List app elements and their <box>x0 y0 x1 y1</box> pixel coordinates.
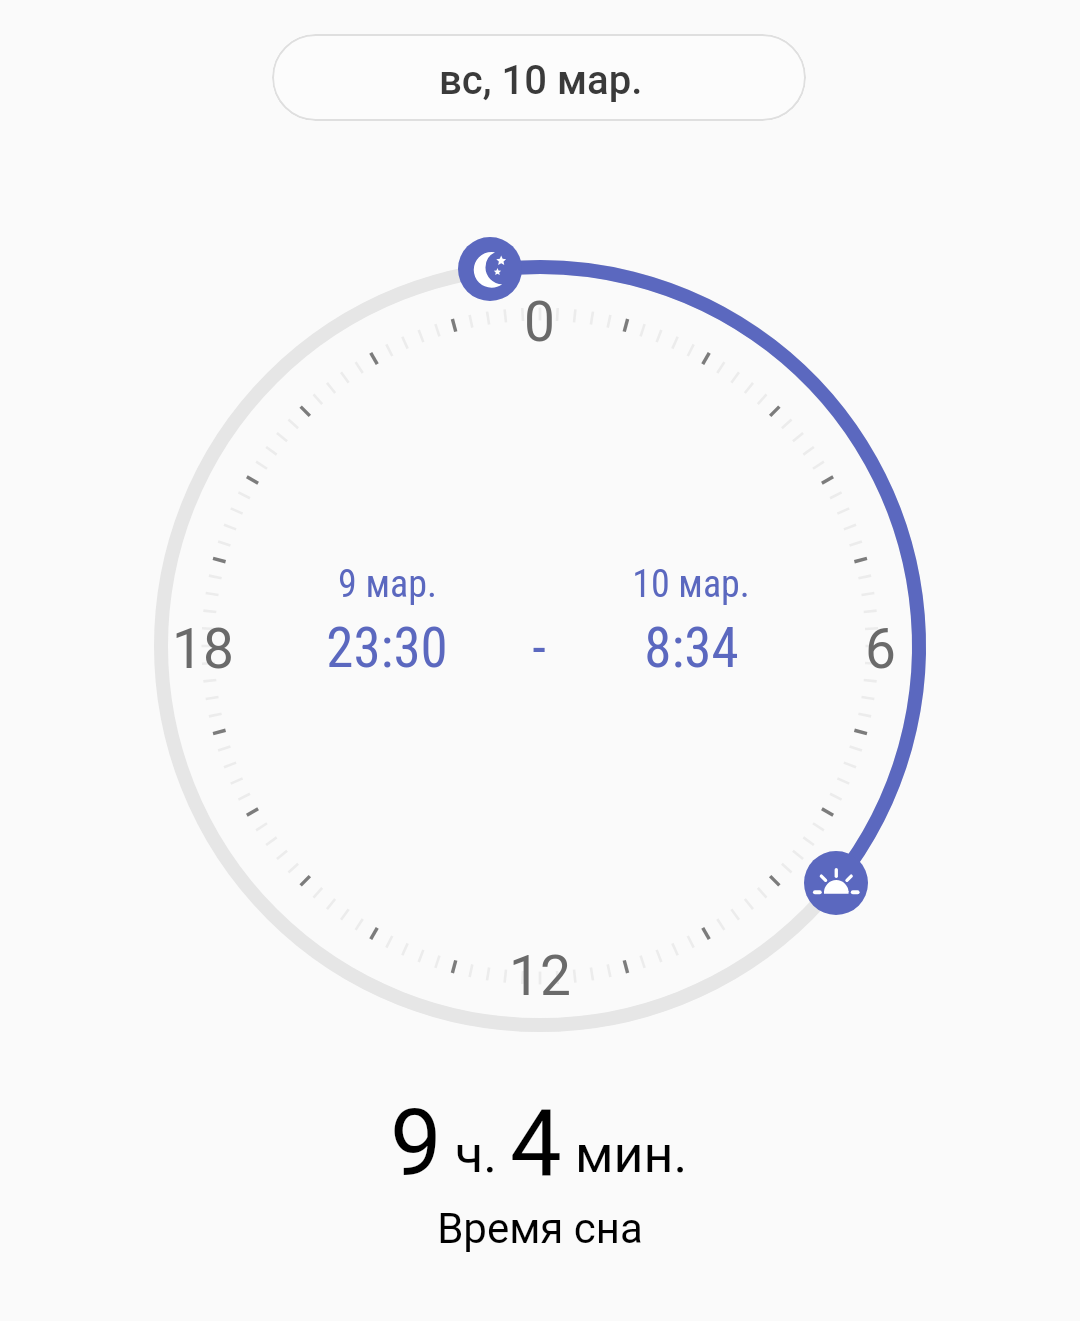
staticText: 6 <box>865 617 896 681</box>
staticText: 0 <box>524 290 555 354</box>
staticText: 9 мар. <box>338 562 437 607</box>
staticText: 23:30 <box>326 616 448 680</box>
staticText: вс, 10 мар. <box>439 57 643 104</box>
staticText: 10 мар. <box>632 562 750 607</box>
button[interactable]: вс, 10 мар. <box>272 34 806 121</box>
staticText: ч. <box>442 1124 510 1185</box>
staticText: 4 <box>510 1090 562 1198</box>
staticText: 9 <box>390 1090 442 1198</box>
staticText: 8:34 <box>644 616 739 680</box>
button[interactable]: Время пробуждения <box>804 851 868 915</box>
staticText: 18 <box>172 617 234 681</box>
button[interactable]: Время отхода ко сну <box>458 237 522 301</box>
staticText: мин. <box>562 1124 688 1185</box>
staticText: 12 <box>509 944 571 1008</box>
staticText: - <box>532 616 546 680</box>
staticText: Время сна <box>437 1204 643 1253</box>
